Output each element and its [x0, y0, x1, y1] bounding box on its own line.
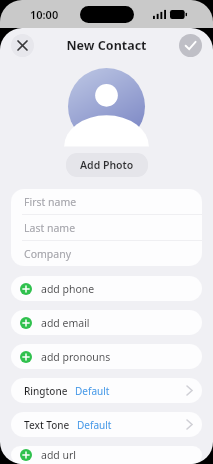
button[interactable]: Text Tone	[11, 412, 202, 437]
staticText: New Contact	[66, 37, 147, 54]
staticText: add email	[41, 316, 90, 330]
button[interactable]: Done	[179, 34, 202, 57]
button[interactable]: First name	[11, 189, 202, 214]
staticText: add phone	[41, 282, 95, 296]
button[interactable]: Ringtone	[11, 378, 202, 403]
staticText: First name	[24, 195, 77, 209]
button[interactable]: add phone	[11, 276, 202, 301]
button[interactable]: Company	[11, 241, 202, 266]
button[interactable]: Last name	[11, 215, 202, 240]
button[interactable]: add pronouns	[11, 344, 202, 369]
staticText: Ringtone	[24, 384, 68, 398]
button[interactable]: add email	[11, 310, 202, 335]
staticText: Company	[24, 247, 71, 261]
staticText: Text Tone	[24, 418, 70, 432]
staticText: add url	[41, 448, 77, 462]
button[interactable]: add url	[11, 446, 202, 464]
staticText: 10:00	[30, 7, 59, 22]
staticText: Add Photo	[80, 158, 134, 172]
button[interactable]: Close	[11, 34, 34, 57]
staticText: Default	[75, 384, 110, 398]
button[interactable]: Add Photo	[66, 153, 148, 177]
staticText: Last name	[24, 221, 76, 235]
staticText: Default	[77, 418, 112, 432]
staticText: add pronouns	[41, 350, 111, 364]
